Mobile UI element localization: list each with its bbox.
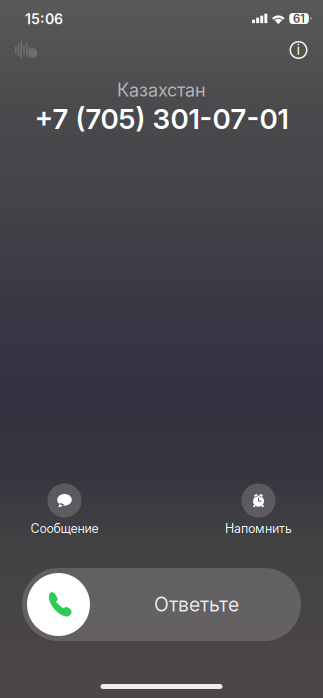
staticText: +7 (705) 301-07-01 [34, 102, 288, 136]
staticText: 61 [293, 12, 305, 25]
staticText: Напомнить [225, 521, 292, 536]
button[interactable]: Сообщение [16, 483, 112, 536]
button[interactable]: Напомнить [210, 483, 306, 536]
staticText: Сообщение [30, 521, 98, 536]
staticText: i [296, 41, 300, 58]
staticText: 15:06 [25, 10, 63, 27]
button[interactable]: Ответьте [22, 568, 301, 641]
staticText: Казахстан [117, 79, 206, 101]
staticText: Ответьте [154, 593, 239, 616]
button[interactable]: Сведения о вызове [282, 34, 314, 66]
